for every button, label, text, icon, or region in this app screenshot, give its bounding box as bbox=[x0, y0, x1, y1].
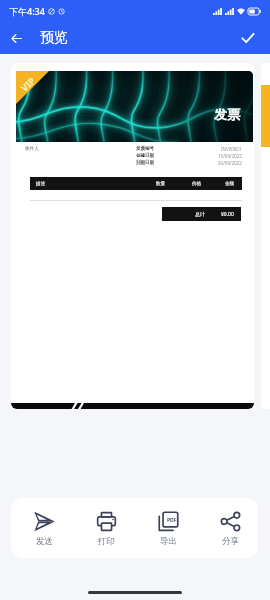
staticText: 价格 bbox=[192, 181, 202, 187]
button[interactable]: 打印 bbox=[78, 498, 134, 558]
staticText: 20/09/2022 bbox=[218, 160, 242, 166]
staticText: 创建日期 bbox=[136, 153, 154, 159]
button[interactable]: Back bbox=[0, 22, 32, 54]
staticText: 预览 bbox=[40, 29, 68, 47]
staticText: 打印 bbox=[98, 536, 115, 547]
staticText: 导出 bbox=[160, 536, 177, 547]
staticText: 收件人 bbox=[25, 146, 39, 152]
staticText: 下午4:34 bbox=[9, 5, 45, 17]
staticText: VIP bbox=[18, 74, 37, 94]
button[interactable]: 发送 bbox=[17, 498, 72, 558]
staticText: ¥0.00 bbox=[221, 211, 234, 218]
staticText: 15/09/2022 bbox=[218, 153, 242, 159]
staticText: PDF bbox=[167, 517, 177, 524]
staticText: 数量 bbox=[156, 181, 166, 187]
button[interactable]: 发票 bbox=[11, 63, 254, 409]
button[interactable]: PDF bbox=[140, 498, 196, 558]
staticText: 发票编号 bbox=[136, 146, 154, 152]
button[interactable]: 分享 bbox=[202, 498, 258, 558]
button[interactable]: Confirm bbox=[232, 22, 264, 54]
staticText: 到期日期 bbox=[136, 160, 154, 166]
staticText: 金额 bbox=[225, 181, 235, 187]
staticText: 发送 bbox=[36, 536, 53, 547]
staticText: 分享 bbox=[222, 536, 239, 547]
staticText: INV00001 bbox=[221, 146, 242, 152]
staticText: 发票 bbox=[214, 106, 240, 122]
staticText: 描述 bbox=[36, 181, 46, 187]
staticText: 总计 bbox=[195, 211, 205, 217]
